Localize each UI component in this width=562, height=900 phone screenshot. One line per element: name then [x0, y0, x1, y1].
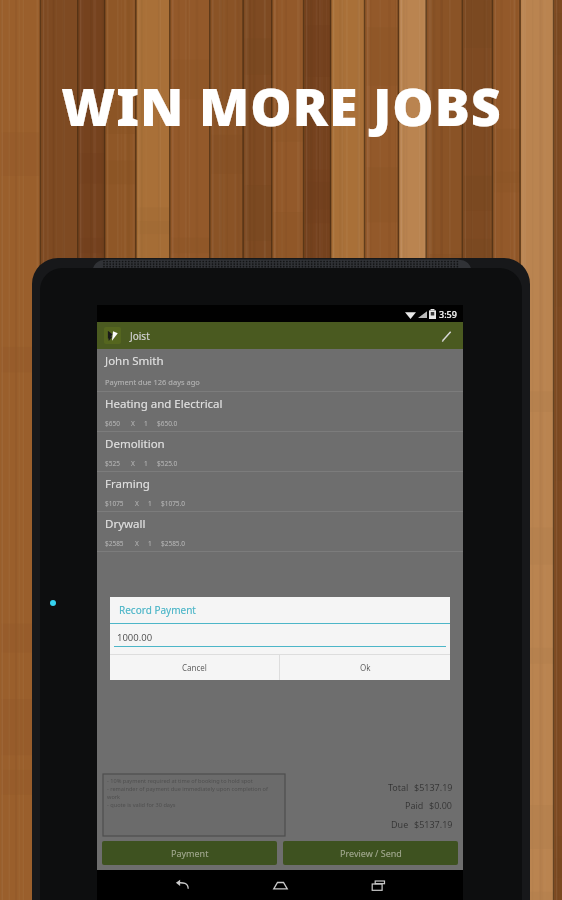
button[interactable]: John Smith	[97, 349, 463, 373]
staticText: $650	[105, 419, 120, 428]
staticText: Due	[391, 818, 409, 830]
button[interactable]: 1000.00	[110, 629, 450, 646]
staticText: Cancel	[182, 662, 207, 673]
staticText: X	[135, 539, 139, 548]
staticText: $2585	[105, 539, 124, 548]
staticText: $0.00	[429, 799, 453, 811]
button[interactable]: Framing	[97, 472, 463, 512]
staticText: 1	[148, 499, 152, 508]
staticText: $5137.19	[414, 781, 453, 793]
staticText: 1000.00	[117, 631, 153, 644]
staticText: WIN MORE JOBS	[61, 70, 502, 141]
button[interactable]: Cancel	[110, 655, 279, 680]
staticText: Drywall	[105, 516, 146, 532]
staticText: Heating and Electrical	[105, 396, 223, 412]
staticText: $525	[105, 459, 120, 468]
staticText: 1	[144, 459, 148, 468]
staticText: $1075.0	[161, 499, 186, 508]
staticText: Payment due 126 days ago	[105, 377, 200, 387]
staticText: Framing	[105, 476, 150, 492]
staticText: Record Payment	[119, 603, 196, 617]
staticText: - remainder of payment due immediately u…	[107, 785, 268, 793]
staticText: $2585.0	[161, 539, 186, 548]
button[interactable]: Edit	[433, 323, 459, 349]
staticText: Payment	[171, 847, 209, 859]
staticText: X	[131, 459, 135, 468]
staticText: 1	[148, 539, 152, 548]
staticText: X	[131, 419, 135, 428]
staticText: $525.0	[157, 459, 178, 468]
staticText: Total	[388, 781, 409, 793]
staticText: John Smith	[105, 353, 164, 369]
staticText: Paid	[405, 799, 424, 811]
staticText: Ok	[360, 662, 371, 673]
staticText: Preview / Send	[340, 847, 402, 859]
staticText: - quote is valid for 30 days	[107, 801, 176, 809]
button[interactable]: Preview / Send	[283, 841, 458, 865]
staticText: 1	[144, 419, 148, 428]
button[interactable]: Ok	[280, 655, 450, 680]
staticText: 3:59	[439, 308, 457, 320]
staticText: work	[107, 793, 121, 801]
staticText: - 10% payment required at time of bookin…	[107, 777, 253, 785]
button[interactable]: Drywall	[97, 512, 463, 552]
staticText: X	[135, 499, 139, 508]
button[interactable]: Back	[159, 870, 205, 900]
staticText: $650.0	[157, 419, 178, 428]
button[interactable]: Recent apps	[355, 870, 401, 900]
button[interactable]: Heating and Electrical	[97, 392, 463, 432]
button[interactable]: Demolition	[97, 432, 463, 472]
staticText: Joist	[130, 329, 150, 343]
button[interactable]: Payment	[102, 841, 277, 865]
staticText: Demolition	[105, 436, 165, 452]
button[interactable]: - 10% payment required at time of bookin…	[103, 774, 285, 836]
button[interactable]: Joist app icon	[104, 327, 121, 344]
button[interactable]: Home	[257, 870, 303, 900]
staticText: $1075	[105, 499, 124, 508]
staticText: $5137.19	[414, 818, 453, 830]
